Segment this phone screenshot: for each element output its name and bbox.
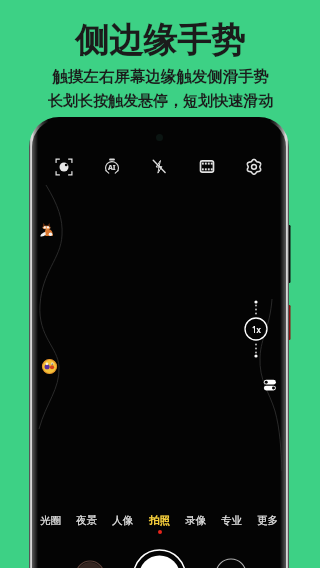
staticText: 长划长按触发悬停，短划快速滑动: [48, 92, 273, 111]
staticText: 拍照: [149, 514, 170, 527]
button[interactable]: 光圈: [38, 512, 63, 529]
button[interactable]: 专业: [219, 512, 244, 529]
button[interactable]: 拍照: [147, 512, 172, 536]
staticText: 光圈: [40, 514, 61, 527]
button[interactable]: 更多: [255, 512, 280, 529]
button[interactable]: Filters: [198, 158, 216, 176]
button[interactable]: Settings: [245, 158, 263, 176]
button[interactable]: 人像: [110, 512, 135, 529]
staticText: AI: [108, 163, 116, 173]
staticText: 1x: [252, 324, 261, 335]
staticText: 触摸左右屏幕边缘触发侧滑手势: [52, 67, 269, 87]
button[interactable]: Gesture shortcut cat: [39, 222, 55, 238]
button[interactable]: Scene recognition: [55, 158, 73, 176]
staticText: 人像: [112, 514, 133, 527]
button[interactable]: Adjust: [263, 378, 277, 392]
button[interactable]: Flash off: [150, 158, 168, 176]
button[interactable]: Gesture shortcut emoji: [42, 359, 57, 374]
button[interactable]: Zoom 1x: [238, 294, 274, 364]
staticText: 更多: [257, 514, 278, 527]
button[interactable]: AI mode: [103, 158, 121, 176]
staticText: 侧边缘手势: [75, 19, 245, 62]
staticText: 夜景: [76, 514, 97, 527]
button[interactable]: 夜景: [74, 512, 99, 529]
staticText: 专业: [221, 514, 242, 527]
staticText: 录像: [185, 514, 206, 527]
button[interactable]: 录像: [183, 512, 208, 529]
